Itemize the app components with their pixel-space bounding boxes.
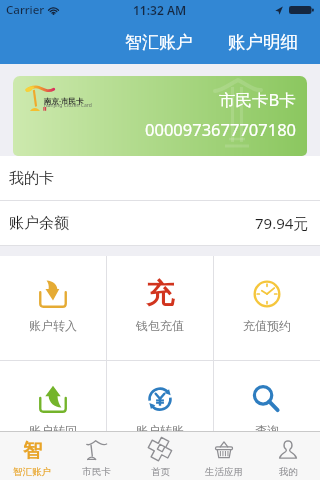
staticText: 账户转回	[29, 423, 77, 438]
button[interactable]: 充值预约	[214, 256, 320, 360]
staticText: 账户明细	[228, 31, 298, 53]
staticText: 智汇账户	[13, 466, 51, 478]
staticText: 市民卡	[82, 466, 111, 478]
staticText: 钱包充值	[136, 318, 184, 333]
staticText: 充	[146, 276, 174, 311]
button[interactable]: 账户明细	[220, 22, 306, 62]
staticText: 账户转账	[136, 423, 184, 438]
staticText: 11:32 AM	[133, 2, 187, 18]
button[interactable]: 首页	[128, 432, 192, 480]
button[interactable]: 账户转账	[107, 361, 213, 465]
staticText: Nanjing Citizen Card	[44, 102, 92, 109]
button[interactable]: 南京·市民卡	[13, 76, 307, 156]
staticText: 79.94元	[255, 213, 309, 233]
button[interactable]: 市民卡	[64, 432, 128, 480]
button[interactable]: 账户余额	[0, 201, 320, 245]
button[interactable]: 查询	[214, 361, 320, 465]
staticText: 智	[23, 439, 42, 460]
button[interactable]: 智汇账户	[117, 23, 201, 62]
button[interactable]: 账户转入	[0, 256, 106, 360]
staticText: 智汇账户	[125, 32, 193, 53]
staticText: 市民卡B卡	[219, 88, 296, 111]
button[interactable]: 账户转回	[0, 361, 106, 465]
staticText: 账户转入	[29, 318, 77, 333]
staticText: 我的卡	[9, 169, 54, 188]
staticText: 查询	[255, 423, 279, 438]
staticText: 生活应用	[205, 466, 243, 478]
button[interactable]: 生活应用	[192, 432, 256, 480]
staticText: 充值预约	[243, 318, 291, 333]
staticText: 账户余额	[9, 214, 69, 233]
staticText: 南京·市民卡	[44, 96, 84, 106]
staticText: 首页	[151, 466, 170, 478]
button[interactable]: 我的	[256, 432, 320, 480]
staticText: 0000973677707180	[145, 118, 297, 140]
staticText: 我的	[279, 466, 298, 478]
button[interactable]: 智	[0, 432, 64, 480]
button[interactable]: 充	[107, 256, 213, 360]
staticText: Carrier	[6, 2, 45, 18]
